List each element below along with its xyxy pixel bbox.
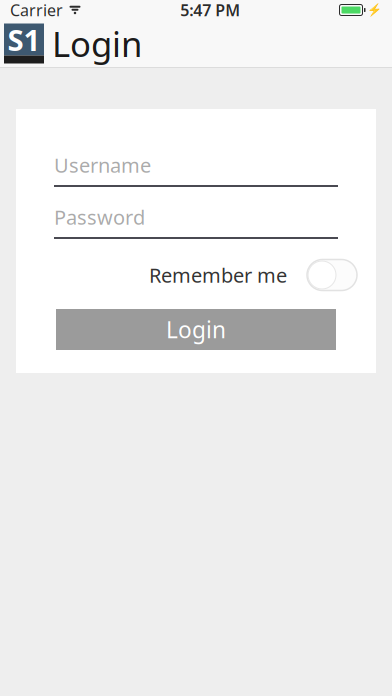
staticText: 5:47 PM — [180, 0, 240, 21]
button[interactable]: Remember me — [307, 259, 357, 290]
staticText: S1 — [7, 20, 40, 59]
staticText: Username — [54, 152, 151, 178]
staticText: Password — [54, 204, 145, 230]
button[interactable]: Login — [56, 309, 336, 350]
staticText: Carrier — [10, 0, 63, 21]
staticText: Login — [166, 314, 226, 344]
staticText: Login — [52, 20, 142, 66]
staticText: ⚡ — [367, 3, 382, 17]
staticText: Remember me — [149, 262, 287, 288]
